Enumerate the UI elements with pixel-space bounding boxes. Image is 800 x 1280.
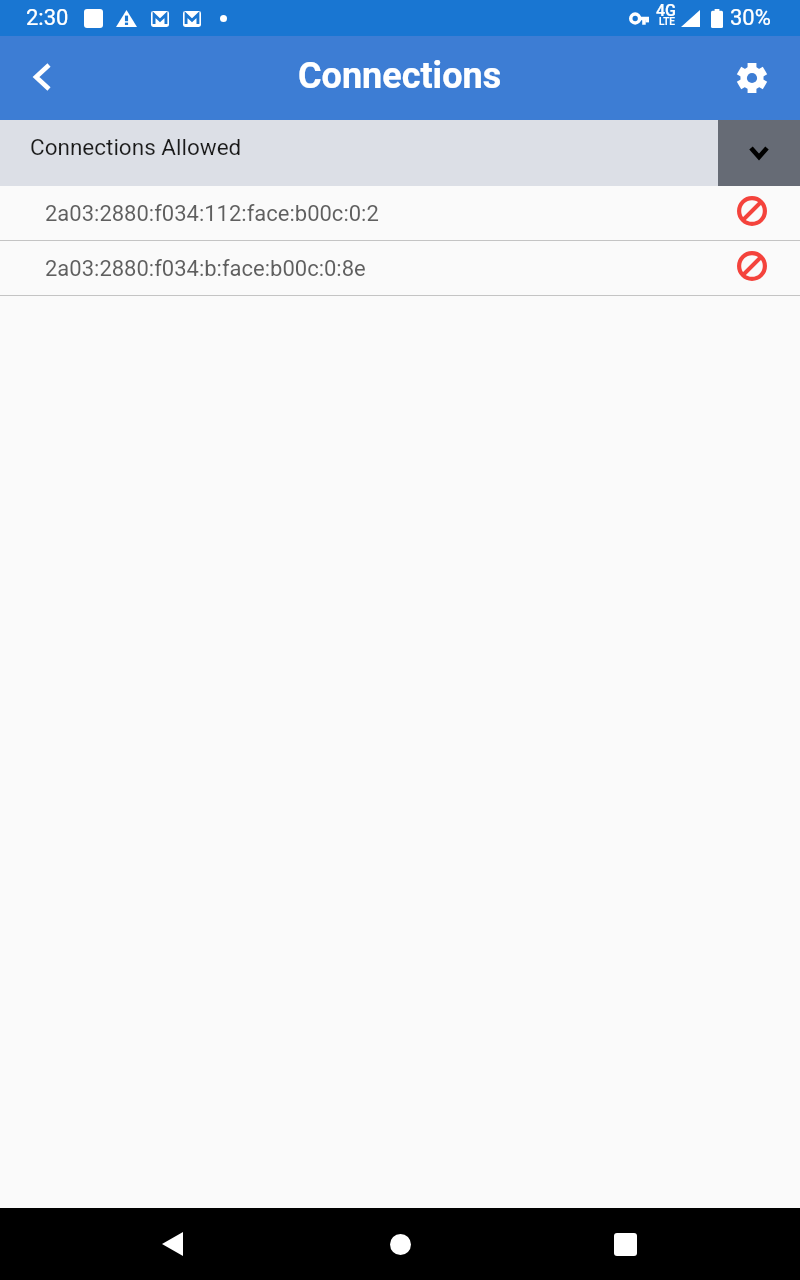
button[interactable]: 2a03:2880:f034:b:face:b00c:0:8e (0, 241, 800, 295)
staticText: 4G (656, 1, 676, 20)
staticText: Connections (298, 55, 502, 97)
button[interactable]: Expand (718, 120, 800, 186)
button[interactable]: Connections Allowed (0, 120, 718, 186)
staticText: 2:30 (26, 5, 69, 31)
button[interactable]: Recent apps (595, 1214, 655, 1274)
button[interactable]: Block connection (737, 251, 767, 281)
staticText: Connections Allowed (30, 134, 242, 160)
button[interactable]: Home (370, 1214, 430, 1274)
staticText: LTE (659, 16, 675, 28)
button[interactable]: Back (142, 1214, 202, 1274)
button[interactable]: Block connection (737, 196, 767, 226)
staticText: 2a03:2880:f034:b:face:b00c:0:8e (45, 256, 366, 282)
button[interactable]: Back (11, 48, 71, 108)
button[interactable]: Settings (722, 48, 782, 108)
button[interactable]: 2a03:2880:f034:112:face:b00c:0:2 (0, 186, 800, 240)
staticText: 30% (730, 5, 771, 31)
staticText: 2a03:2880:f034:112:face:b00c:0:2 (45, 201, 379, 227)
